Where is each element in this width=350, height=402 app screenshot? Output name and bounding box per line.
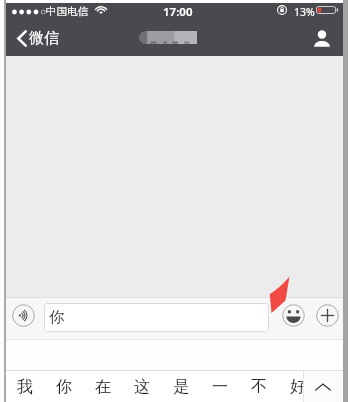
button[interactable]: 一 xyxy=(201,371,239,402)
staticText: 微信 xyxy=(29,29,59,48)
button[interactable]: Expand candidates xyxy=(303,371,342,402)
staticText: 中国电信 xyxy=(46,5,88,18)
button[interactable]: 我 xyxy=(6,371,44,402)
staticText: 这 xyxy=(134,377,150,397)
staticText: 你 xyxy=(56,377,72,397)
button[interactable]: 不 xyxy=(240,371,278,402)
staticText: 好 xyxy=(290,377,306,397)
staticText: 17:00 xyxy=(163,4,193,20)
staticText: 是 xyxy=(173,377,189,397)
staticText: 不 xyxy=(251,377,267,397)
button[interactable]: 好 xyxy=(279,371,317,402)
staticText: 我 xyxy=(17,377,33,397)
staticText: 一 xyxy=(212,377,228,397)
button[interactable]: 微信 xyxy=(6,20,67,56)
staticText: 你 xyxy=(49,308,64,327)
button[interactable]: 你 xyxy=(45,371,83,402)
button[interactable]: 在 xyxy=(84,371,122,402)
staticText: 13% xyxy=(294,5,315,19)
button[interactable]: Emoji xyxy=(280,302,307,329)
button[interactable]: 这 xyxy=(123,371,161,402)
button[interactable]: Voice input xyxy=(10,302,37,329)
button[interactable]: More options xyxy=(314,302,341,329)
button[interactable]: Contact profile xyxy=(305,20,339,56)
button[interactable]: 是 xyxy=(162,371,200,402)
staticText: 在 xyxy=(95,377,111,397)
button[interactable]: 你 xyxy=(44,303,269,332)
